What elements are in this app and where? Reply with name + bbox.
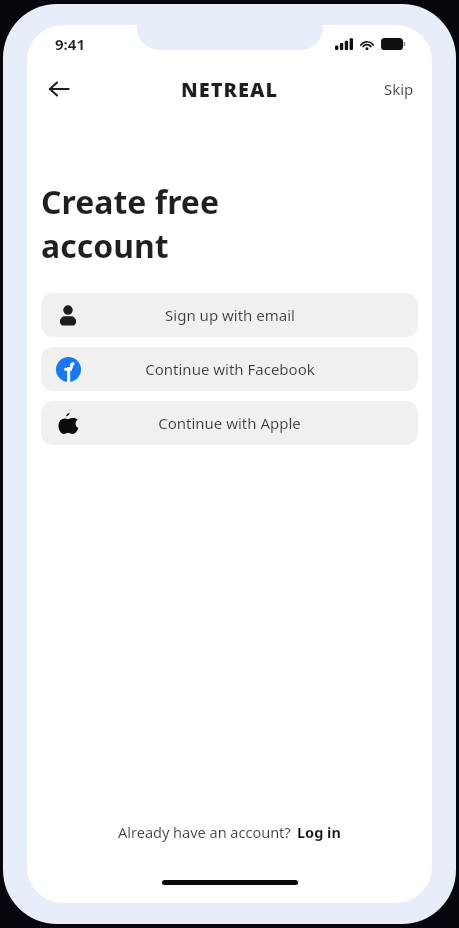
- button[interactable]: Continue with Facebook: [41, 347, 418, 391]
- button[interactable]: Already have an account?: [108, 816, 351, 848]
- button[interactable]: Sign up with email: [41, 293, 418, 337]
- staticText: account: [41, 224, 169, 268]
- staticText: Create free: [41, 180, 220, 224]
- staticText: Continue with Apple: [158, 413, 301, 433]
- button[interactable]: Back: [35, 65, 83, 113]
- button[interactable]: Continue with Apple: [41, 401, 418, 445]
- staticText: Sign up with email: [165, 305, 295, 325]
- button[interactable]: Skip: [376, 73, 422, 105]
- staticText: Skip: [384, 79, 414, 99]
- staticText: NETREAL: [181, 76, 279, 103]
- staticText: Already have an account?: [118, 822, 291, 842]
- staticText: Log in: [297, 822, 341, 842]
- staticText: Continue with Facebook: [145, 359, 315, 379]
- staticText: 9:41: [55, 34, 85, 54]
